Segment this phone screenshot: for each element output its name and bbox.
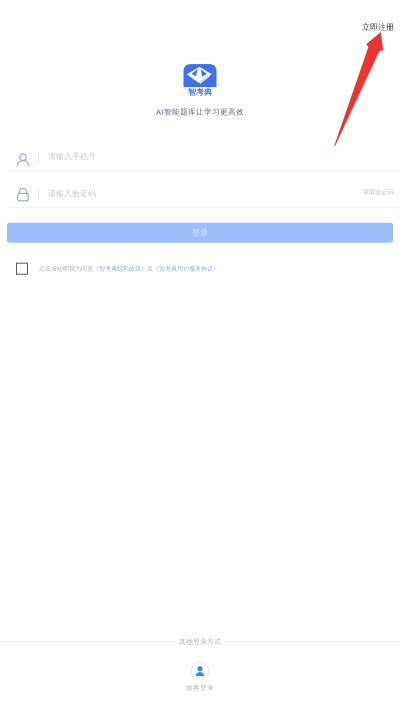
- staticText: 其他登录方式: [179, 637, 221, 646]
- staticText: 《智考典用户服务协议》: [153, 265, 219, 273]
- staticText: 及: [147, 265, 153, 273]
- button[interactable]: 《智考典隐私政策》: [93, 265, 147, 273]
- button[interactable]: 游客登录: [186, 662, 214, 692]
- staticText: 登录: [192, 227, 208, 238]
- staticText: 获取验证码: [363, 188, 393, 196]
- staticText: 点击按钮即视为同意: [39, 265, 93, 273]
- staticText: 智考典: [188, 87, 212, 97]
- button[interactable]: 同意用户协议与隐私政策: [16, 263, 28, 275]
- button[interactable]: 《智考典用户服务协议》: [153, 265, 219, 273]
- staticText: 请输入验证码: [48, 188, 96, 198]
- button[interactable]: 立即注册: [352, 14, 400, 40]
- staticText: 《智考典隐私政策》: [93, 265, 147, 273]
- staticText: 游客登录: [186, 684, 214, 692]
- staticText: 请输入手机号: [48, 151, 96, 161]
- staticText: 立即注册: [362, 22, 394, 32]
- button[interactable]: 登录: [7, 223, 393, 243]
- staticText: AI智能题库让学习更高效: [156, 106, 244, 117]
- button[interactable]: 获取验证码: [353, 184, 393, 204]
